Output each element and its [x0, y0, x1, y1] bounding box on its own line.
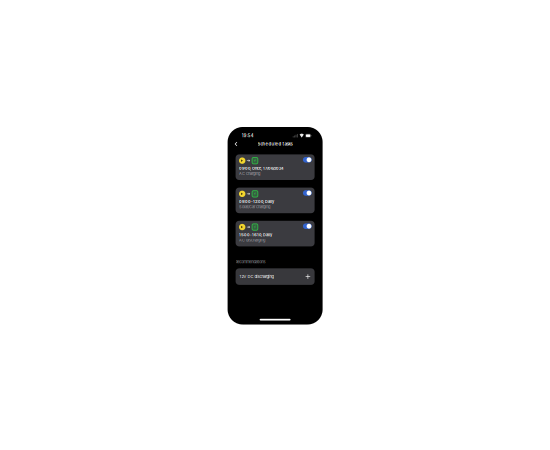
staticText: 12V DC discharging — [239, 274, 273, 279]
staticText: AC discharging — [239, 238, 265, 242]
staticText: 15:00-16:10, Daily — [239, 232, 272, 237]
button[interactable]: 15:00-16:10, Daily — [236, 221, 315, 246]
button[interactable]: 09:00, Once, 17/06/2024 — [236, 154, 315, 180]
button[interactable]: 12V DC discharging — [236, 268, 315, 285]
staticText: 09:00-12:00, Daily — [239, 199, 274, 204]
staticText: 09:00, Once, 17/06/2024 — [239, 166, 284, 171]
button[interactable]: Enable 09:00, Once, 17/06/2024 — [303, 157, 312, 163]
staticText: Scheduled tasks — [258, 141, 293, 146]
button[interactable]: 09:00-12:00, Daily — [236, 188, 315, 213]
button[interactable]: Add 12V DC discharging task — [304, 273, 311, 280]
staticText: AC charging — [239, 171, 260, 176]
staticText: 19:54 — [242, 133, 254, 138]
button[interactable]: Enable 15:00-16:10, Daily — [303, 223, 312, 229]
staticText: Solar/Car charging — [239, 204, 270, 209]
button[interactable]: Back — [233, 140, 239, 148]
button[interactable]: Enable 09:00-12:00, Daily — [303, 190, 312, 196]
staticText: Recommendations — [236, 259, 266, 264]
